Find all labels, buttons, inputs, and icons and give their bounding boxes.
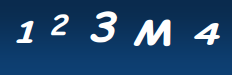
staticText: M: [132, 8, 163, 56]
staticText: 3: [87, 0, 111, 55]
staticText: 2: [49, 6, 65, 43]
staticText: 1: [11, 11, 29, 52]
staticText: 4: [192, 13, 210, 54]
